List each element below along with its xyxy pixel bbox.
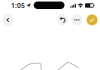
- button[interactable]: Undo: [57, 14, 68, 25]
- button[interactable]: Back: [2, 14, 13, 25]
- button[interactable]: Done: [87, 14, 98, 25]
- button[interactable]: More: [71, 14, 82, 25]
- staticText: 1:05: [11, 1, 25, 10]
